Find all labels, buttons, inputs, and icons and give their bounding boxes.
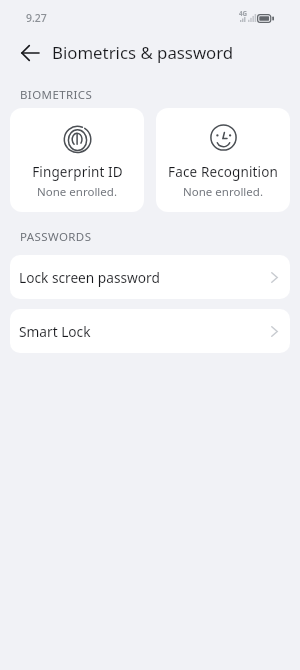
staticText: None enrolled. [37, 184, 117, 200]
staticText: 9.27 [26, 11, 47, 25]
staticText: Lock screen password [19, 268, 160, 287]
staticText: Smart Lock [19, 322, 91, 341]
button[interactable]: Face Recognition [156, 108, 290, 212]
button[interactable]: Lock screen password [10, 255, 290, 299]
staticText: None enrolled. [183, 184, 263, 200]
button[interactable]: Fingerprint ID [10, 108, 144, 212]
staticText: PASSWORDS [20, 229, 92, 245]
button[interactable]: Smart Lock [10, 309, 290, 353]
staticText: Biometrics & password [52, 41, 234, 64]
staticText: Face Recognition [168, 163, 278, 181]
staticText: BIOMETRICS [20, 87, 93, 103]
button[interactable]: Back [8, 31, 52, 75]
staticText: 4G [239, 9, 248, 17]
staticText: Fingerprint ID [32, 163, 123, 181]
